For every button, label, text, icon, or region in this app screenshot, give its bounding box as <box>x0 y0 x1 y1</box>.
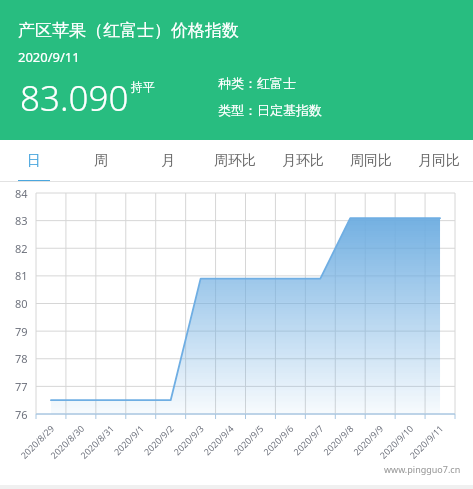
staticText: 类型：日定基指数 <box>218 102 322 118</box>
staticText: 种类：红富士 <box>218 75 296 91</box>
staticText: 月 <box>161 152 175 170</box>
staticText: 周环比 <box>214 152 256 170</box>
staticText: 83.090 <box>20 74 129 122</box>
staticText: 产区苹果（红富士）价格指数 <box>18 20 239 41</box>
staticText: 月同比 <box>418 152 460 170</box>
button[interactable]: 月同比 <box>405 140 473 182</box>
button[interactable]: 日 <box>0 140 67 182</box>
button[interactable]: 月 <box>134 140 201 182</box>
staticText: 持平 <box>131 79 155 94</box>
staticText: 周 <box>94 152 108 170</box>
staticText: 日 <box>27 152 41 170</box>
staticText: 周同比 <box>350 152 392 170</box>
staticText: 2020/9/11 <box>18 48 80 66</box>
button[interactable]: 周同比 <box>337 140 405 182</box>
staticText: 月环比 <box>282 152 324 170</box>
button[interactable]: 周 <box>67 140 134 182</box>
button[interactable]: 周环比 <box>201 140 269 182</box>
button[interactable]: 月环比 <box>269 140 337 182</box>
